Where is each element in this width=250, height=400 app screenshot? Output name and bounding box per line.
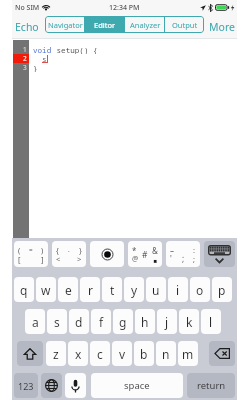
- staticText: x: [75, 346, 82, 362]
- button[interactable]: More: [209, 20, 235, 34]
- button[interactable]: –: [166, 241, 200, 267]
- other: Change keyboard: [45, 379, 58, 392]
- staticText: v: [119, 346, 126, 362]
- button[interactable]: t: [102, 277, 122, 302]
- staticText: space: [124, 379, 150, 392]
- button[interactable]: w: [36, 277, 56, 302]
- staticText: s: [54, 314, 60, 330]
- button[interactable]: d: [69, 309, 89, 334]
- button[interactable]: Shift: [17, 341, 43, 366]
- staticText: void: [33, 45, 52, 54]
- button[interactable]: o: [190, 277, 210, 302]
- staticText: e: [65, 282, 72, 298]
- button[interactable]: n: [156, 341, 176, 366]
- button[interactable]: Dictate: [65, 373, 86, 398]
- staticText: #: [142, 249, 148, 261]
- button[interactable]: i: [168, 277, 188, 302]
- staticText: ,: [182, 253, 185, 264]
- button[interactable]: j: [157, 309, 177, 334]
- button[interactable]: y: [124, 277, 144, 302]
- staticText: setup() {: [52, 45, 98, 54]
- button[interactable]: Output: [165, 16, 204, 33]
- button[interactable]: Navigator: [45, 16, 85, 33]
- staticText: w: [41, 282, 51, 298]
- button[interactable]: Editor: [85, 16, 125, 33]
- staticText: }: [79, 245, 82, 255]
- button[interactable]: Echo: [15, 20, 39, 34]
- staticText: l: [209, 314, 213, 330]
- button[interactable]: l: [201, 309, 221, 334]
- button[interactable]: b: [134, 341, 154, 366]
- staticText: f: [99, 314, 104, 330]
- button[interactable]: m: [178, 341, 198, 366]
- staticText: p: [218, 282, 226, 298]
- button[interactable]: 123: [14, 373, 38, 398]
- button[interactable]: space: [91, 373, 183, 398]
- staticText: =: [29, 245, 33, 254]
- staticText: i: [176, 282, 180, 298]
- other: Hide keyboard: [208, 245, 231, 263]
- button[interactable]: Hide keyboard: [204, 241, 235, 267]
- staticText: h: [141, 314, 149, 330]
- button[interactable]: k: [179, 309, 199, 334]
- staticText: [: [18, 254, 21, 264]
- button[interactable]: z: [46, 341, 66, 366]
- staticText: g: [119, 314, 127, 330]
- button[interactable]: *: [128, 241, 162, 267]
- button[interactable]: return: [187, 373, 235, 398]
- staticText: y: [131, 282, 138, 298]
- button[interactable]: e: [58, 277, 78, 302]
- button[interactable]: v: [112, 341, 132, 366]
- staticText: (: [18, 245, 21, 255]
- staticText: *: [132, 245, 137, 256]
- other: Dictate: [71, 379, 80, 393]
- button[interactable]: q: [14, 277, 34, 302]
- button[interactable]: x: [68, 341, 88, 366]
- staticText: 3: [23, 63, 27, 72]
- staticText: b: [140, 346, 148, 362]
- staticText: return: [197, 379, 226, 392]
- staticText: ▪: [153, 257, 158, 264]
- button[interactable]: Backspace: [209, 341, 235, 366]
- button[interactable]: Analyzer: [125, 16, 165, 33]
- staticText: Output: [172, 20, 198, 30]
- button[interactable]: h: [135, 309, 155, 334]
- button[interactable]: p: [212, 277, 232, 302]
- staticText: <: [56, 254, 61, 264]
- button[interactable]: f: [91, 309, 111, 334]
- staticText: Analyzer: [130, 20, 161, 30]
- button[interactable]: c: [90, 341, 110, 366]
- button[interactable]: (: [14, 241, 48, 267]
- other: Shift: [24, 348, 36, 360]
- staticText: m: [182, 346, 194, 362]
- button[interactable]: u: [146, 277, 166, 302]
- staticText: d: [75, 314, 83, 330]
- staticText: >: [77, 254, 82, 264]
- button[interactable]: Record: [90, 241, 124, 267]
- staticText: @: [132, 254, 139, 264]
- button[interactable]: g: [113, 309, 133, 334]
- staticText: –: [170, 245, 174, 256]
- staticText: o: [196, 282, 204, 298]
- staticText: Navigator: [48, 20, 83, 30]
- button[interactable]: {: [52, 241, 86, 267]
- button[interactable]: Change keyboard: [41, 373, 62, 398]
- staticText: n: [162, 346, 170, 362]
- staticText: k: [186, 314, 193, 330]
- button[interactable]: r: [80, 277, 100, 302]
- staticText: z: [53, 346, 59, 362]
- staticText: ;: [193, 254, 196, 264]
- staticText: :: [193, 245, 196, 255]
- staticText: ]: [41, 254, 44, 264]
- button[interactable]: a: [25, 309, 45, 334]
- staticText: ): [41, 245, 44, 255]
- staticText: }: [33, 63, 38, 72]
- staticText: .: [182, 249, 185, 260]
- staticText: 123: [18, 380, 34, 392]
- staticText: 1: [23, 45, 27, 54]
- staticText: Editor: [94, 20, 116, 30]
- staticText: ': [170, 253, 172, 264]
- button[interactable]: s: [47, 309, 67, 334]
- staticText: Echo: [15, 20, 39, 34]
- staticText: .: [68, 245, 70, 254]
